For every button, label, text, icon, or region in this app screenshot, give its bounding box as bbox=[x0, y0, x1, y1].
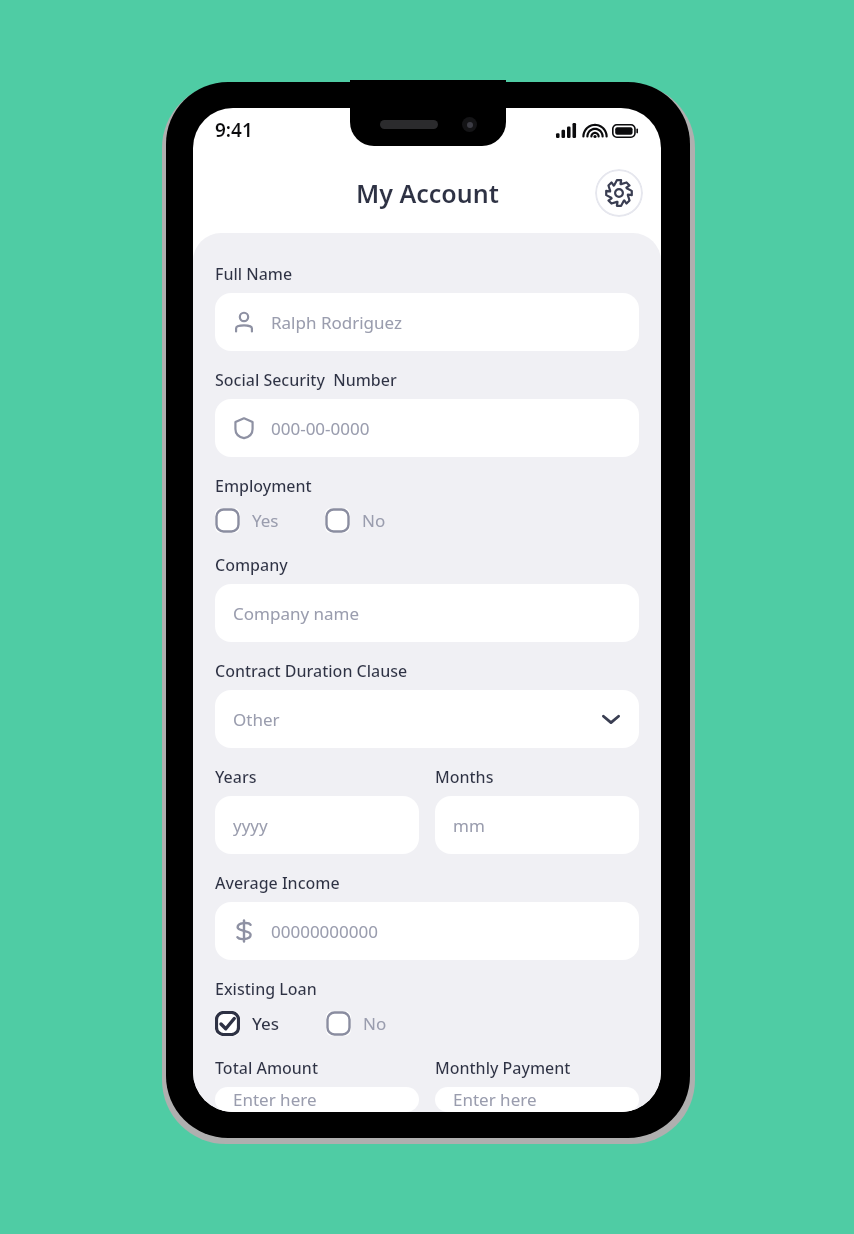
staticText: Yes bbox=[252, 1012, 280, 1035]
staticText: 9:41 bbox=[215, 117, 253, 143]
staticText: Existing Loan bbox=[215, 978, 317, 1000]
staticText: Years bbox=[215, 766, 257, 788]
staticText: Total Amount bbox=[215, 1057, 319, 1079]
staticText: Contract Duration Clause bbox=[215, 660, 408, 682]
staticText: No bbox=[362, 509, 386, 532]
button[interactable]: 00000000000 bbox=[215, 902, 639, 960]
staticText: Full Name bbox=[215, 263, 293, 285]
staticText: Other bbox=[233, 708, 280, 731]
staticText: My Account bbox=[356, 176, 499, 210]
button[interactable]: Yes bbox=[215, 508, 279, 533]
button[interactable]: mm bbox=[435, 796, 639, 854]
staticText: Company name bbox=[233, 602, 360, 625]
button[interactable]: Enter here bbox=[215, 1087, 419, 1112]
button[interactable]: 000-00-0000 bbox=[215, 399, 639, 457]
button[interactable]: Yes bbox=[215, 1011, 280, 1036]
staticText: Average Income bbox=[215, 872, 340, 894]
button[interactable]: yyyy bbox=[215, 796, 419, 854]
staticText: mm bbox=[453, 814, 485, 837]
staticText: Monthly Payment bbox=[435, 1057, 571, 1079]
staticText: No bbox=[363, 1012, 387, 1035]
button[interactable]: Enter here bbox=[435, 1087, 639, 1112]
button[interactable]: Settings bbox=[595, 169, 643, 217]
staticText: 00000000000 bbox=[271, 920, 378, 943]
staticText: Months bbox=[435, 766, 494, 788]
staticText: yyyy bbox=[233, 814, 268, 837]
button[interactable]: Company name bbox=[215, 584, 639, 642]
staticText: Enter here bbox=[233, 1088, 317, 1111]
staticText: Social Security Number bbox=[215, 369, 397, 391]
staticText: 000-00-0000 bbox=[271, 417, 370, 440]
staticText: Employment bbox=[215, 475, 312, 497]
button[interactable]: Ralph Rodriguez bbox=[215, 293, 639, 351]
staticText: Company bbox=[215, 554, 288, 576]
staticText: Yes bbox=[252, 509, 279, 532]
staticText: Enter here bbox=[453, 1088, 537, 1111]
button[interactable]: No bbox=[326, 1011, 387, 1036]
button[interactable]: Other bbox=[215, 690, 639, 748]
staticText: Ralph Rodriguez bbox=[271, 311, 402, 334]
button[interactable]: No bbox=[325, 508, 386, 533]
